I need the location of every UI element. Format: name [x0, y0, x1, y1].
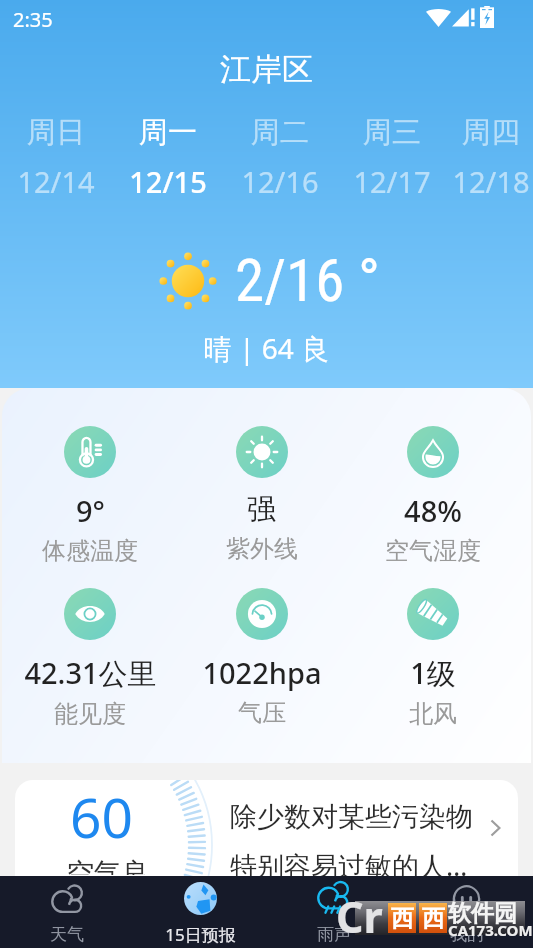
button[interactable]: 周二: [224, 114, 336, 201]
button[interactable]: 42.31公里: [4, 588, 176, 729]
staticText: 特别容易过敏的人…: [230, 847, 468, 876]
staticText: CA173.COM: [448, 920, 533, 940]
staticText: 我的: [450, 924, 484, 945]
staticText: 周三: [363, 114, 421, 151]
staticText: 9°: [76, 491, 105, 530]
staticText: 雨声: [317, 924, 351, 945]
staticText: 15日预报: [165, 923, 236, 946]
staticText: 强: [247, 491, 276, 528]
button[interactable]: 我的: [400, 876, 533, 948]
staticText: 周日: [27, 114, 85, 151]
staticText: 空气良: [66, 856, 150, 875]
staticText: 天气: [50, 924, 84, 945]
other: 详情: [480, 813, 510, 843]
button[interactable]: 60: [15, 780, 518, 876]
button[interactable]: 1级: [347, 588, 518, 729]
staticText: 周一: [139, 114, 197, 151]
staticText: 周二: [251, 114, 309, 151]
button[interactable]: 强: [176, 426, 347, 564]
staticText: 12/15: [129, 162, 207, 201]
staticText: 1022hpa: [202, 653, 322, 692]
staticText: 1级: [410, 653, 456, 693]
staticText: 48%: [404, 491, 462, 530]
staticText: 软件园: [448, 899, 517, 928]
staticText: 除少数对某些污染物: [230, 800, 473, 834]
staticText: 体感温度: [42, 536, 138, 566]
button[interactable]: 48%: [347, 426, 518, 566]
button[interactable]: 1022hpa: [176, 588, 347, 728]
staticText: 江岸区: [0, 50, 533, 89]
staticText: 紫外线: [226, 534, 298, 564]
staticText: 气压: [238, 698, 286, 728]
staticText: 2:35: [13, 6, 53, 33]
button[interactable]: 15日预报: [134, 876, 267, 948]
staticText: Cr: [336, 887, 383, 945]
button[interactable]: 周日: [0, 114, 112, 201]
staticText: 60: [70, 780, 133, 854]
staticText: 12/16: [241, 162, 319, 201]
staticText: 12/17: [353, 162, 431, 201]
staticText: 12/18: [452, 162, 530, 201]
staticText: 西: [391, 904, 414, 933]
staticText: 晴 | 64 良: [0, 329, 533, 367]
staticText: 12/14: [17, 162, 95, 201]
button[interactable]: 周四: [448, 114, 533, 201]
staticText: 空气湿度: [385, 536, 481, 566]
button[interactable]: 周一: [112, 114, 224, 201]
button[interactable]: 周三: [336, 114, 448, 201]
staticText: 西: [422, 904, 445, 933]
button[interactable]: 雨声: [267, 876, 400, 948]
staticText: 2/16 °: [235, 246, 380, 315]
staticText: 能见度: [54, 699, 126, 729]
staticText: 周四: [462, 114, 520, 151]
staticText: 42.31公里: [24, 653, 157, 693]
staticText: 北风: [409, 699, 457, 729]
button[interactable]: 9°: [4, 426, 176, 566]
button[interactable]: 天气: [0, 876, 134, 948]
